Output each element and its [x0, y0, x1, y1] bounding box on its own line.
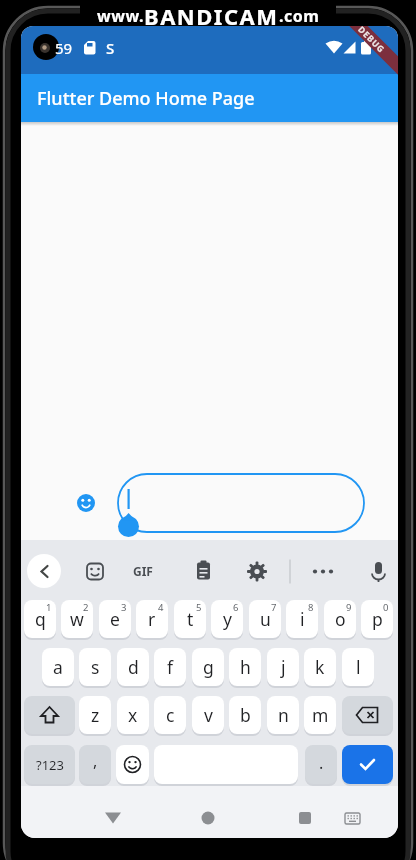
staticText: k	[315, 655, 325, 679]
button[interactable]: u	[249, 600, 281, 638]
staticText: m	[312, 703, 329, 727]
staticText: t	[187, 607, 194, 631]
button[interactable]: i	[286, 600, 318, 638]
staticText: d	[128, 655, 139, 679]
staticText: n	[278, 703, 289, 727]
button[interactable]: s	[79, 648, 111, 686]
staticText: a	[53, 655, 63, 679]
staticText: www.	[97, 5, 144, 27]
staticText: p	[372, 607, 383, 631]
button[interactable]: p	[361, 600, 393, 638]
button[interactable]: e	[99, 600, 131, 638]
button[interactable]: .	[305, 745, 337, 784]
button[interactable]: f	[154, 648, 186, 686]
staticText: q	[35, 607, 46, 631]
button[interactable]: k	[304, 648, 336, 686]
staticText: 59	[55, 38, 73, 58]
button[interactable]: d	[117, 648, 149, 686]
staticText: 1	[46, 601, 52, 614]
button[interactable]: a	[42, 648, 74, 686]
staticText: l	[356, 655, 361, 679]
button[interactable]: g	[192, 648, 224, 686]
button[interactable]: t	[174, 600, 206, 638]
staticText: BANDICAM	[144, 1, 279, 31]
button[interactable]	[24, 696, 75, 734]
staticText: j	[281, 655, 286, 679]
staticText: s	[91, 655, 100, 679]
staticText: 2	[83, 601, 89, 614]
staticText: r	[148, 607, 156, 631]
button[interactable]: q	[24, 600, 56, 638]
staticText: 4	[158, 601, 164, 614]
staticText: 6	[233, 601, 239, 614]
button[interactable]: ?123	[24, 745, 75, 784]
button[interactable]	[116, 745, 149, 784]
staticText: g	[203, 655, 214, 679]
staticText: i	[300, 607, 305, 631]
staticText: u	[260, 607, 271, 631]
button[interactable]: l	[342, 648, 374, 686]
staticText: 3	[121, 601, 127, 614]
button[interactable]: z	[79, 696, 111, 734]
button[interactable]	[192, 804, 224, 832]
staticText: 7	[271, 601, 277, 614]
button[interactable]: ,	[79, 745, 111, 784]
button[interactable]	[342, 696, 393, 734]
staticText: f	[167, 655, 174, 679]
staticText: 0	[383, 601, 389, 614]
staticText: ,	[93, 750, 98, 772]
button[interactable]	[342, 745, 393, 784]
staticText: h	[240, 655, 251, 679]
staticText: 8	[308, 601, 314, 614]
button[interactable]: r	[136, 600, 168, 638]
staticText: e	[110, 607, 120, 631]
button[interactable]	[283, 804, 315, 832]
button[interactable]: c	[154, 696, 186, 734]
button[interactable]: n	[267, 696, 299, 734]
button[interactable]: x	[117, 696, 149, 734]
staticText: 9	[346, 601, 352, 614]
button[interactable]: w	[61, 600, 93, 638]
staticText: w	[70, 607, 84, 631]
staticText: ?123	[36, 756, 64, 774]
button[interactable]: m	[304, 696, 336, 734]
staticText: 5	[196, 601, 202, 614]
staticText: v	[204, 703, 213, 727]
staticText: .com	[279, 5, 320, 27]
staticText: o	[335, 607, 346, 631]
staticText: c	[166, 703, 175, 727]
button[interactable]: b	[229, 696, 261, 734]
button[interactable]	[27, 554, 61, 588]
button[interactable]: j	[267, 648, 299, 686]
staticText: b	[240, 703, 251, 727]
staticText: z	[91, 703, 100, 727]
button[interactable]: y	[211, 600, 243, 638]
button[interactable]: h	[229, 648, 261, 686]
button[interactable]: o	[324, 600, 356, 638]
staticText: DEBUG	[355, 26, 388, 56]
staticText: x	[128, 703, 138, 727]
staticText: y	[223, 607, 232, 631]
staticText: Flutter Demo Home Page	[37, 86, 255, 111]
button[interactable]	[97, 804, 129, 832]
staticText: S	[106, 38, 115, 58]
staticText: GIF	[133, 563, 153, 579]
staticText: .	[319, 752, 324, 774]
button[interactable]: v	[192, 696, 224, 734]
